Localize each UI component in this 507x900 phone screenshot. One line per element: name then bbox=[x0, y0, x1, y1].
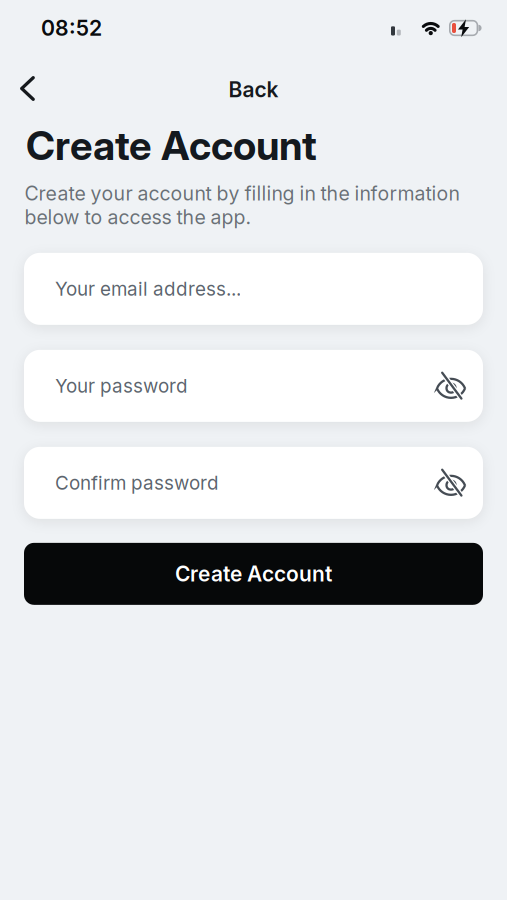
button[interactable]: Your email address... bbox=[24, 253, 483, 325]
staticText: Confirm password bbox=[55, 471, 219, 494]
button[interactable]: Your password bbox=[24, 350, 483, 422]
staticText: Back bbox=[228, 77, 278, 102]
staticText: Create your account by filling in the in… bbox=[24, 182, 459, 205]
button[interactable]: Back bbox=[0, 73, 43, 104]
staticText: below to access the app. bbox=[24, 205, 251, 229]
staticText: Create Account bbox=[26, 121, 317, 170]
button[interactable]: Show password bbox=[433, 366, 469, 405]
button[interactable]: Show password bbox=[433, 463, 469, 502]
staticText: Your email address... bbox=[55, 277, 241, 300]
button[interactable]: Confirm password bbox=[24, 447, 483, 519]
button[interactable]: Create Account bbox=[24, 543, 483, 605]
staticText: Create Account bbox=[175, 561, 332, 586]
staticText: Your password bbox=[55, 374, 188, 397]
staticText: 08:52 bbox=[41, 15, 102, 41]
